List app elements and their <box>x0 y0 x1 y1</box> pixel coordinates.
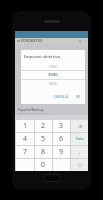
button[interactable]: More options <box>83 38 88 44</box>
button[interactable]: Menu <box>15 38 21 44</box>
staticText: 6 <box>59 134 64 144</box>
staticText: 9 <box>59 147 64 157</box>
staticText: 0 <box>41 160 46 170</box>
button[interactable]: done <box>71 133 88 145</box>
button[interactable]: 8 <box>35 146 52 158</box>
staticText: PODOMETRO <box>21 39 43 43</box>
staticText: OK <box>76 95 81 99</box>
button[interactable]: CANCELLA <box>53 94 70 100</box>
button[interactable]: del <box>71 120 88 132</box>
staticText: 4 <box>23 134 28 144</box>
staticText: 7 <box>23 147 28 157</box>
button[interactable]: 6 <box>53 133 70 145</box>
button[interactable]: OK <box>74 94 83 100</box>
staticText: 5 <box>41 134 46 144</box>
button[interactable]: 3 <box>53 120 70 132</box>
staticText: Fatto <box>76 137 84 141</box>
button[interactable]: dot <box>71 146 88 158</box>
button[interactable]: 7 <box>16 146 34 158</box>
button[interactable]: 0 <box>35 159 52 171</box>
staticText: Imposta obiettivo <box>24 53 61 59</box>
button[interactable]: 5 <box>35 133 52 145</box>
button[interactable]: 2 <box>35 120 52 132</box>
staticText: 4000 <box>49 81 57 86</box>
staticText: Salva i dati su un file esterno <box>18 112 49 115</box>
button[interactable]: Search <box>77 38 83 44</box>
staticText: CANCELLA <box>54 95 69 99</box>
button[interactable]: 4 <box>16 133 34 145</box>
staticText: 3 <box>59 121 64 131</box>
staticText: 1 <box>23 121 28 131</box>
staticText: 2 <box>41 121 46 131</box>
button[interactable]: 1 <box>16 120 34 132</box>
staticText: Esporta/Backup <box>18 107 44 112</box>
staticText: 8 <box>41 147 46 157</box>
staticText: 2000 <box>49 64 57 69</box>
button[interactable]: 9 <box>53 146 70 158</box>
staticText: , <box>79 149 81 155</box>
staticText: 3000 <box>48 72 58 78</box>
button[interactable]: mic <box>71 159 88 171</box>
